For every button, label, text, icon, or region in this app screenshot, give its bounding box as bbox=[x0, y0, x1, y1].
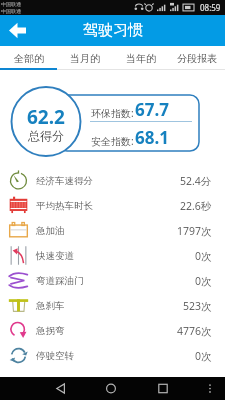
staticText: 52.4分 bbox=[180, 174, 212, 188]
staticText: 08:59 bbox=[200, 2, 221, 13]
staticText: 中国联通 bbox=[1, 8, 21, 14]
staticText: 停驶空转 bbox=[36, 350, 74, 362]
staticText: 当年的 bbox=[126, 52, 156, 65]
button[interactable]: 急加油 bbox=[0, 218, 225, 243]
staticText: 全部的 bbox=[14, 52, 44, 65]
staticText: 弯道踩油门 bbox=[36, 275, 84, 287]
staticText: 急加油 bbox=[36, 225, 65, 237]
staticText: 平均热车时长 bbox=[36, 200, 93, 212]
button[interactable]: 停驶空转 bbox=[0, 343, 225, 368]
button[interactable]: 当年的 bbox=[113, 46, 169, 70]
button[interactable]: 当月的 bbox=[57, 46, 113, 70]
staticText: 22.6秒 bbox=[180, 199, 212, 213]
staticText: 523次 bbox=[183, 299, 212, 313]
button[interactable]: 急刹车 bbox=[0, 293, 225, 318]
staticText: 环保指数: bbox=[91, 106, 134, 120]
button[interactable]: Back bbox=[0, 15, 34, 46]
staticText: 经济车速得分 bbox=[36, 175, 93, 187]
staticText: 驾驶习惯 bbox=[83, 21, 143, 40]
staticText: 急拐弯 bbox=[36, 325, 65, 337]
button[interactable]: Menu bbox=[203, 377, 225, 400]
staticText: 急刹车 bbox=[36, 300, 65, 312]
button[interactable]: 弯道踩油门 bbox=[0, 268, 225, 293]
staticText: 分段报表 bbox=[177, 52, 217, 65]
staticText: 安全指数: bbox=[91, 134, 134, 148]
button[interactable]: 经济车速得分 bbox=[0, 168, 225, 193]
staticText: 中国联通 bbox=[1, 1, 21, 7]
button[interactable]: 全部的 bbox=[0, 46, 57, 70]
staticText: 0次 bbox=[195, 249, 212, 263]
button[interactable]: Recent apps bbox=[145, 377, 181, 400]
button[interactable]: 分段报表 bbox=[169, 46, 225, 70]
button[interactable]: Back bbox=[43, 377, 79, 400]
staticText: 总得分 bbox=[28, 128, 64, 143]
button[interactable]: 急拐弯 bbox=[0, 318, 225, 343]
staticText: 1797次 bbox=[177, 224, 212, 238]
staticText: 68.1 bbox=[135, 126, 169, 149]
button[interactable]: 快速变道 bbox=[0, 243, 225, 268]
staticText: 62.2 bbox=[27, 104, 65, 130]
staticText: 0次 bbox=[195, 274, 212, 288]
staticText: 0次 bbox=[195, 349, 212, 363]
button[interactable]: 平均热车时长 bbox=[0, 193, 225, 218]
staticText: 当月的 bbox=[70, 52, 100, 65]
staticText: 快速变道 bbox=[36, 250, 74, 262]
button[interactable]: Home bbox=[93, 377, 129, 400]
staticText: 4776次 bbox=[177, 324, 212, 338]
staticText: 67.7 bbox=[135, 98, 169, 121]
